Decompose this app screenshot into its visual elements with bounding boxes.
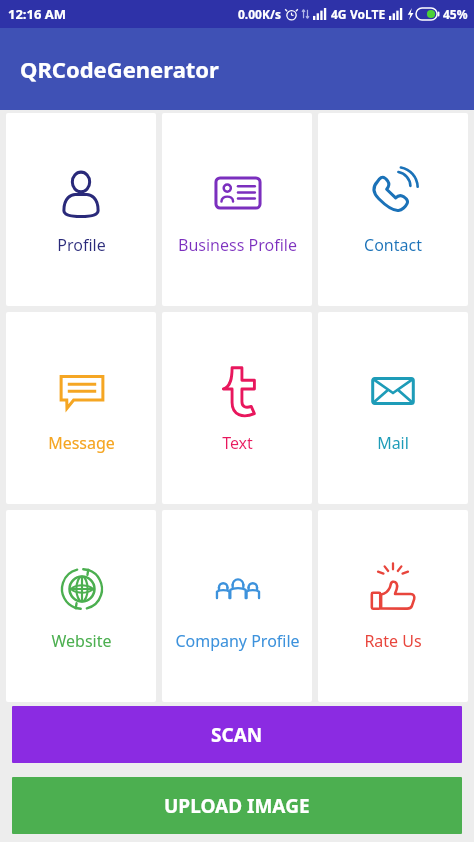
staticText: Message — [48, 432, 115, 454]
button[interactable]: Contact — [318, 113, 468, 306]
staticText: Text — [222, 432, 253, 454]
staticText: Mail — [377, 432, 409, 454]
staticText: Website — [51, 630, 112, 652]
staticText: 12:16 AM — [8, 5, 67, 23]
staticText: Contact — [364, 234, 422, 256]
button[interactable]: UPLOAD IMAGE — [12, 777, 462, 834]
button[interactable]: SCAN — [12, 706, 462, 763]
staticText: UPLOAD IMAGE — [164, 793, 310, 819]
button[interactable]: Website — [6, 510, 156, 702]
staticText: VoLTE — [350, 6, 386, 22]
staticText: QRCodeGenerator — [20, 54, 219, 84]
button[interactable]: Text — [162, 312, 312, 504]
button[interactable]: Mail — [318, 312, 468, 504]
staticText: Rate Us — [364, 630, 422, 652]
button[interactable]: Business Profile — [162, 113, 312, 306]
button[interactable]: Profile — [6, 113, 156, 306]
button[interactable]: Rate Us — [318, 510, 468, 702]
staticText: Business Profile — [178, 234, 297, 256]
staticText: 0.00K/s — [238, 6, 281, 22]
staticText: Profile — [57, 234, 106, 256]
staticText: SCAN — [211, 722, 263, 748]
staticText: Company Profile — [175, 630, 300, 652]
button[interactable]: Message — [6, 312, 156, 504]
staticText: 4G — [331, 6, 347, 22]
staticText: 45% — [443, 6, 468, 22]
button[interactable]: Company Profile — [162, 510, 312, 702]
